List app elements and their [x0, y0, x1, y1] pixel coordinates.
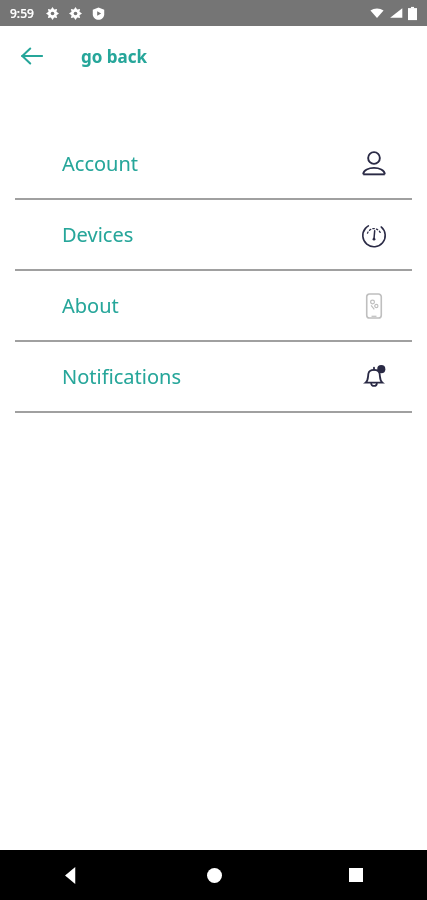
button[interactable]: Home: [143, 850, 285, 900]
staticText: About: [62, 292, 357, 319]
button[interactable]: Back: [10, 34, 54, 78]
button[interactable]: Recent apps: [285, 850, 427, 900]
staticText: go back: [81, 45, 148, 68]
button[interactable]: Notifications: [0, 342, 427, 411]
button[interactable]: Account: [0, 129, 427, 198]
staticText: Notifications: [62, 363, 357, 390]
staticText: 9:59: [10, 5, 34, 21]
staticText: Devices: [62, 221, 357, 248]
button[interactable]: Devices: [0, 200, 427, 269]
button[interactable]: About: [0, 271, 427, 340]
button[interactable]: Back: [0, 850, 143, 900]
staticText: Account: [62, 150, 357, 177]
